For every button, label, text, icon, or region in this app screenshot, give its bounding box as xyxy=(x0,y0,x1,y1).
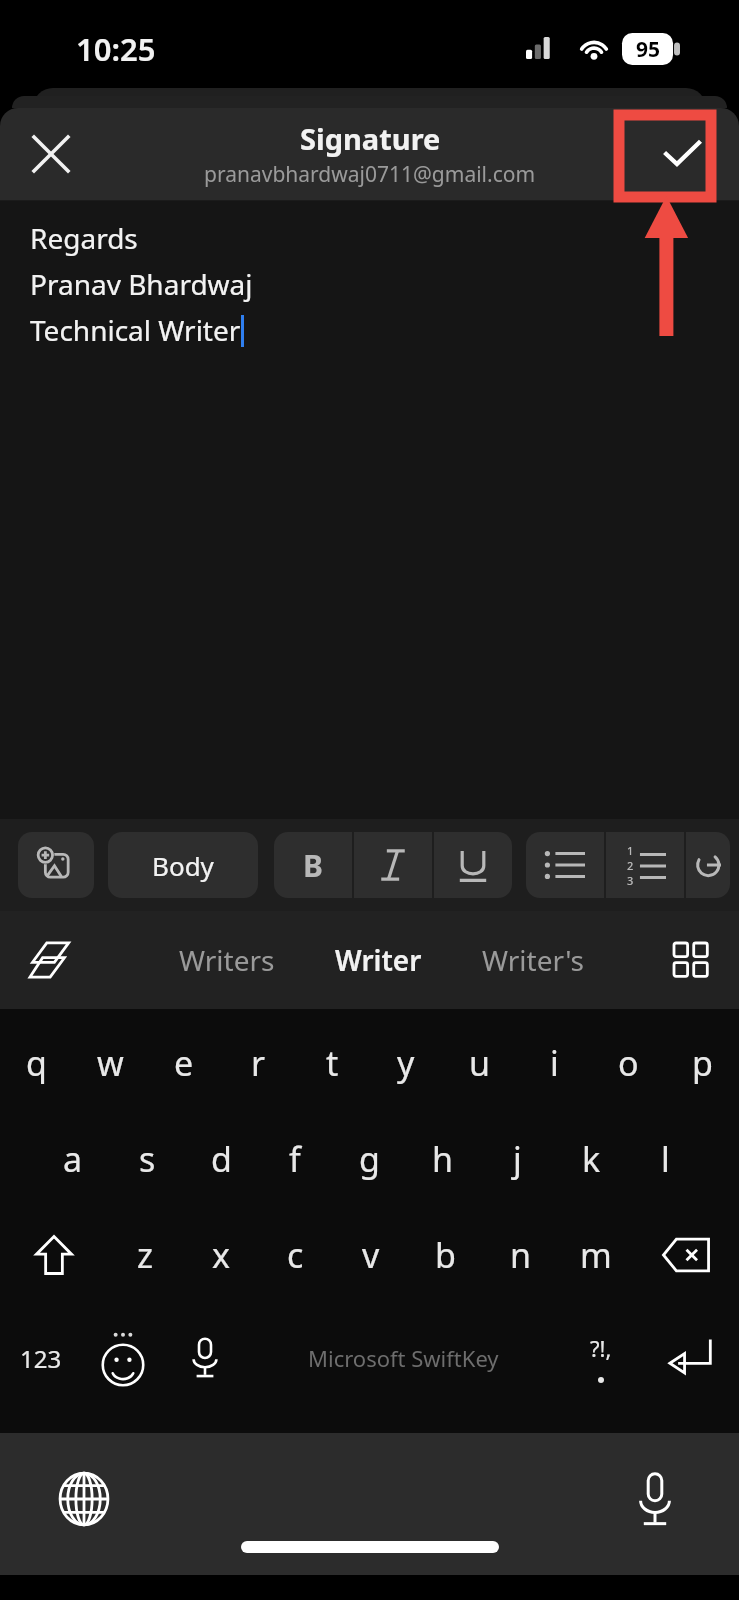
staticText: Technical Writer xyxy=(30,311,241,349)
button[interactable]: x xyxy=(183,1207,258,1303)
button[interactable]: Punctuation xyxy=(560,1310,642,1406)
button[interactable]: g xyxy=(332,1111,406,1207)
button[interactable]: h xyxy=(406,1111,480,1207)
staticText: 123 xyxy=(20,1342,62,1375)
staticText: b xyxy=(435,1232,456,1278)
staticText: i xyxy=(550,1040,559,1086)
button[interactable]: Body xyxy=(108,832,258,898)
button[interactable]: Writers xyxy=(173,929,281,991)
button[interactable]: c xyxy=(258,1207,333,1303)
staticText: Regards xyxy=(30,219,138,257)
staticText: Microsoft SwiftKey xyxy=(308,1343,499,1373)
staticText: Signature xyxy=(300,119,441,158)
staticText: x xyxy=(212,1232,230,1278)
button[interactable]: m xyxy=(558,1207,633,1303)
button[interactable]: Shift xyxy=(0,1207,107,1303)
button[interactable]: p xyxy=(665,1015,739,1111)
staticText: t xyxy=(326,1040,339,1086)
button[interactable]: Italic xyxy=(354,832,432,898)
staticText: z xyxy=(137,1232,153,1278)
staticText: n xyxy=(510,1232,532,1278)
button[interactable]: SwiftKey xyxy=(18,927,84,993)
button[interactable]: a xyxy=(36,1111,110,1207)
button[interactable]: 123 xyxy=(0,1310,82,1406)
staticText: m xyxy=(580,1232,612,1278)
button[interactable]: r xyxy=(221,1015,295,1111)
staticText: k xyxy=(582,1136,601,1182)
button[interactable]: q xyxy=(0,1015,73,1111)
button[interactable]: l xyxy=(628,1111,702,1207)
button[interactable]: z xyxy=(107,1207,183,1303)
staticText: Pranav Bhardwaj xyxy=(30,265,253,303)
staticText: 10:25 xyxy=(76,28,156,70)
button[interactable]: Close xyxy=(14,117,88,191)
button[interactable]: Space xyxy=(246,1310,560,1406)
staticText: Writers xyxy=(179,941,275,979)
button[interactable]: i xyxy=(517,1015,591,1111)
button[interactable]: Writer xyxy=(329,929,428,991)
staticText: 3 xyxy=(627,873,634,888)
button[interactable]: n xyxy=(483,1207,558,1303)
button[interactable]: d xyxy=(184,1111,258,1207)
button[interactable]: Writer's xyxy=(476,929,591,991)
button[interactable]: Bold xyxy=(274,832,352,898)
staticText: ?!, xyxy=(590,1333,612,1363)
staticText: o xyxy=(618,1040,639,1086)
staticText: v xyxy=(362,1232,380,1278)
staticText: a xyxy=(63,1136,83,1182)
staticText: pranavbhardwaj0711@gmail.com xyxy=(204,160,536,189)
staticText: B xyxy=(303,845,323,886)
staticText: d xyxy=(211,1136,232,1182)
staticText: l xyxy=(661,1136,670,1182)
button[interactable]: v xyxy=(333,1207,408,1303)
staticText: 2 xyxy=(627,858,634,873)
button[interactable]: Bulleted list xyxy=(526,832,604,898)
button[interactable]: w xyxy=(73,1015,147,1111)
staticText: h xyxy=(432,1136,454,1182)
staticText: y xyxy=(397,1040,415,1086)
button[interactable]: More keyboard options xyxy=(661,930,721,990)
button[interactable]: j xyxy=(480,1111,554,1207)
staticText: g xyxy=(359,1136,380,1182)
button[interactable]: Change language xyxy=(50,1465,118,1533)
button[interactable]: t xyxy=(295,1015,369,1111)
staticText: e xyxy=(174,1040,194,1086)
button[interactable]: Underline xyxy=(434,832,512,898)
staticText: 1 xyxy=(627,843,634,858)
button[interactable]: o xyxy=(591,1015,665,1111)
button[interactable]: e xyxy=(147,1015,221,1111)
staticText: Writer xyxy=(335,941,422,979)
button[interactable]: y xyxy=(369,1015,443,1111)
button[interactable]: Voice input xyxy=(164,1310,246,1406)
staticText: 95 xyxy=(636,35,661,64)
staticText: q xyxy=(26,1040,47,1086)
staticText: w xyxy=(97,1040,124,1086)
button[interactable]: u xyxy=(443,1015,517,1111)
staticText: r xyxy=(251,1040,266,1086)
button[interactable]: k xyxy=(554,1111,628,1207)
staticText: u xyxy=(469,1040,491,1086)
staticText: j xyxy=(513,1136,522,1182)
button[interactable]: b xyxy=(408,1207,483,1303)
button[interactable]: Save signature xyxy=(643,115,721,193)
button[interactable]: Emoji xyxy=(82,1310,164,1406)
button[interactable]: Enter xyxy=(642,1310,739,1406)
button[interactable]: Numbered list xyxy=(606,832,684,898)
staticText: Body xyxy=(152,848,214,883)
button[interactable]: Insert image xyxy=(18,832,94,898)
button[interactable]: f xyxy=(258,1111,332,1207)
staticText: Writer's xyxy=(482,941,585,979)
staticText: p xyxy=(692,1040,713,1086)
staticText: c xyxy=(287,1232,304,1278)
button[interactable]: Voice search xyxy=(621,1465,689,1533)
staticText: f xyxy=(289,1136,301,1182)
button[interactable]: s xyxy=(110,1111,184,1207)
button[interactable]: Backspace xyxy=(633,1207,739,1303)
staticText: s xyxy=(139,1136,156,1182)
button[interactable]: Indent xyxy=(686,832,730,898)
